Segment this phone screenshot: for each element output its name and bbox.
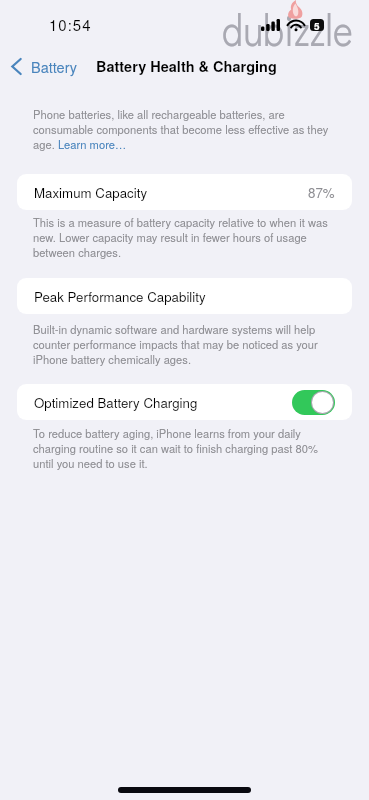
- staticText: Maximum Capacity: [34, 183, 148, 202]
- button[interactable]: Optimized Battery Charging: [292, 390, 335, 415]
- staticText: 10:54: [49, 14, 92, 35]
- other: Battery 5 percent: [310, 19, 324, 31]
- staticText: 5: [314, 19, 320, 31]
- button[interactable]: Maximum Capacity: [17, 174, 352, 210]
- button[interactable]: Battery: [0, 56, 86, 77]
- staticText: Phone batteries, like all rechargeable b…: [33, 106, 333, 152]
- button[interactable]: Peak Performance Capability: [17, 278, 352, 314]
- staticText: Optimized Battery Charging: [34, 393, 198, 412]
- staticText: Battery Health & Charging: [96, 56, 277, 77]
- staticText: Peak Performance Capability: [34, 287, 206, 306]
- staticText: Built-in dynamic software and hardware s…: [33, 321, 333, 367]
- staticText: dubizzle: [222, 0, 353, 58]
- staticText: Battery: [31, 56, 78, 77]
- button[interactable]: Optimized Battery Charging: [17, 384, 352, 420]
- staticText: 87%: [308, 183, 335, 202]
- staticText: This is a measure of battery capacity re…: [33, 214, 333, 260]
- staticText: To reduce battery aging, iPhone learns f…: [33, 425, 333, 471]
